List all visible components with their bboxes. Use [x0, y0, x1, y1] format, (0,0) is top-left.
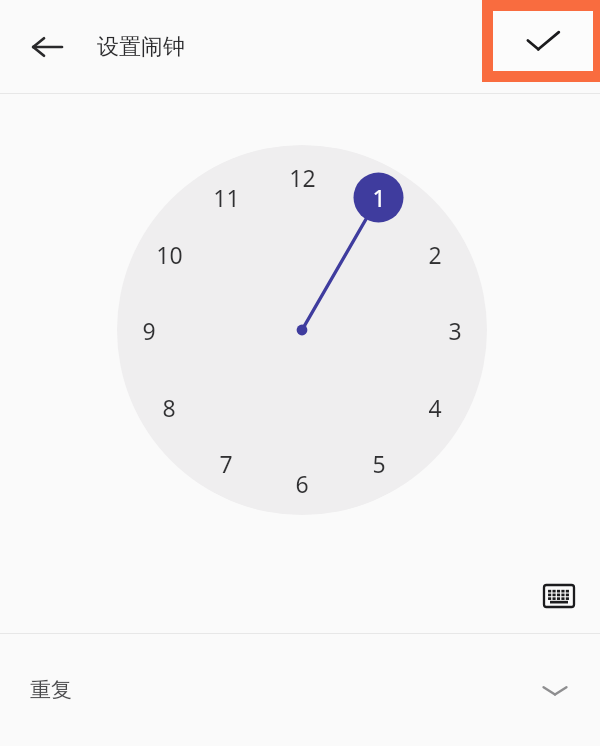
staticText: 设置闹钟: [97, 33, 185, 61]
button[interactable]: 重复: [0, 634, 600, 746]
staticText: 1: [372, 182, 386, 213]
button[interactable]: 4: [411, 389, 459, 425]
button[interactable]: 5: [355, 445, 403, 481]
button[interactable]: 8: [145, 389, 193, 425]
staticText: 5: [372, 448, 386, 479]
staticText: 重复: [30, 677, 72, 703]
staticText: 12: [289, 162, 316, 193]
staticText: 8: [162, 392, 176, 423]
button[interactable]: Back: [19, 19, 75, 75]
staticText: 10: [156, 239, 183, 270]
staticText: 4: [428, 392, 442, 423]
button[interactable]: Confirm: [493, 11, 593, 71]
button[interactable]: 11: [202, 179, 250, 215]
button[interactable]: 12: [278, 159, 326, 195]
button[interactable]: Switch to keyboard input: [535, 572, 583, 620]
staticText: 6: [295, 468, 309, 499]
button[interactable]: 10: [145, 236, 193, 272]
staticText: 9: [142, 315, 156, 346]
staticText: 11: [213, 182, 240, 213]
button[interactable]: 3: [431, 312, 479, 348]
staticText: 2: [428, 239, 442, 270]
button[interactable]: 2: [411, 236, 459, 272]
staticText: 3: [448, 315, 462, 346]
button[interactable]: 6: [278, 465, 326, 501]
button[interactable]: 7: [202, 445, 250, 481]
staticText: 7: [219, 448, 233, 479]
button[interactable]: 1: [355, 179, 403, 215]
button[interactable]: 9: [125, 312, 173, 348]
